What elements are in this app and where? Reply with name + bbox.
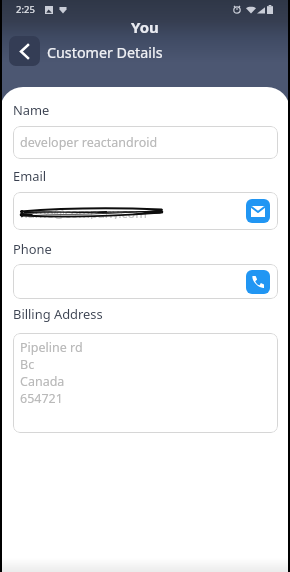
staticText: Pipeline rd xyxy=(20,339,83,356)
button[interactable]: Pipeline rd xyxy=(13,333,278,433)
staticText: Customer Details xyxy=(47,43,163,62)
staticText: Name xyxy=(13,101,50,119)
button[interactable]: name@company.com xyxy=(13,192,278,230)
button[interactable]: Back xyxy=(9,36,40,66)
button[interactable]: Call xyxy=(246,270,270,294)
staticText: 2:25 xyxy=(16,3,35,16)
button[interactable]: Call xyxy=(13,264,278,299)
staticText: Phone xyxy=(13,240,52,258)
staticText: You xyxy=(131,17,159,37)
staticText: Billing Address xyxy=(13,305,103,323)
staticText: Email xyxy=(13,167,47,185)
staticText: name@company.com xyxy=(20,205,147,219)
button[interactable]: Email xyxy=(246,199,270,223)
staticText: Bc xyxy=(20,356,35,373)
staticText: developer reactandroid xyxy=(20,134,158,151)
staticText: 654721 xyxy=(20,390,63,407)
staticText: Canada xyxy=(20,373,65,390)
button[interactable]: developer reactandroid xyxy=(13,126,278,159)
